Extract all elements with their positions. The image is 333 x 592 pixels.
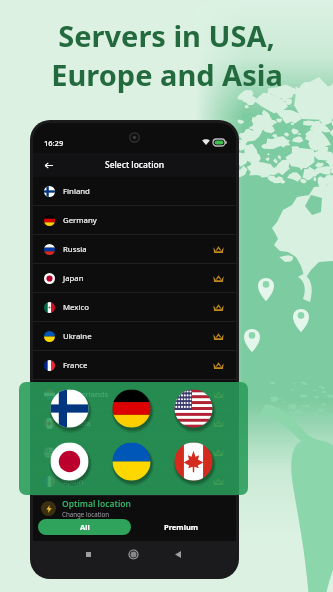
button[interactable]: Germany [33,206,236,234]
button[interactable] [19,382,248,495]
staticText: Premium [164,522,199,532]
staticText: Change location [62,510,110,518]
staticText: Germany [63,215,97,226]
button[interactable]: Netherlands [33,380,236,408]
staticText: Mexico [63,302,89,313]
button[interactable]: Optimal location [33,497,236,519]
staticText: Netherlands [63,389,109,400]
staticText: Europe and Asia [51,55,283,94]
staticText: Russia [63,244,87,255]
staticText: 16:29 [44,138,64,148]
button[interactable]: Brazil [33,438,236,466]
button[interactable]: Back [171,547,185,561]
button[interactable]: All [38,519,131,535]
staticText: Spain [63,476,84,487]
button[interactable]: Russia [33,235,236,263]
button[interactable]: Recents [81,547,95,561]
staticText: Brazil [63,447,84,458]
button[interactable]: Mexico [33,293,236,321]
staticText: Optimal location [62,498,132,510]
button[interactable]: Back [39,156,57,174]
staticText: Ukraine [63,331,92,342]
staticText: Canada [63,418,91,429]
button[interactable]: Finland [33,177,236,205]
staticText: Japan [63,273,84,284]
staticText: Servers in USA, [58,16,275,55]
staticText: France [63,360,88,371]
button[interactable]: Canada [33,409,236,437]
staticText: Select location [105,159,164,171]
button[interactable]: Home [126,547,140,561]
button[interactable]: Premium [131,519,231,535]
button[interactable]: Spain [33,467,236,495]
button[interactable]: Japan [33,264,236,292]
staticText: All [80,522,90,532]
staticText: Finland [63,186,90,197]
button[interactable]: France [33,351,236,379]
button[interactable]: Ukraine [33,322,236,350]
